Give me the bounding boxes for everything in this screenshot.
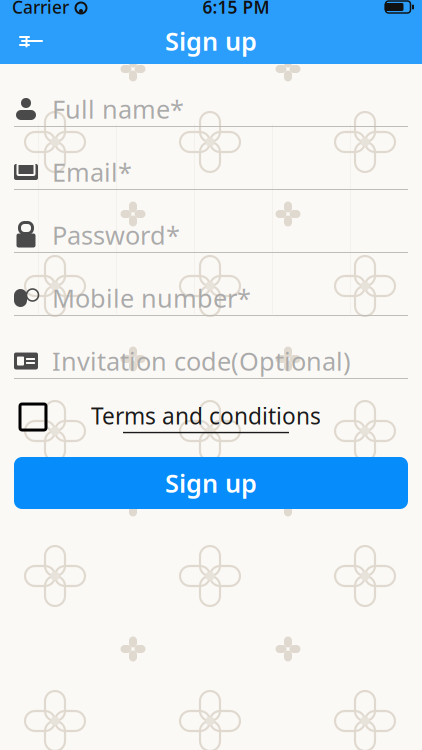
staticText: Full name*	[52, 92, 184, 126]
button[interactable]: Back	[10, 19, 54, 63]
staticText: Password*	[52, 218, 180, 252]
button[interactable]: Email*	[0, 141, 422, 204]
button[interactable]: Full name*	[0, 78, 422, 141]
staticText: Mobile number*	[52, 281, 251, 315]
button[interactable]: Sign up	[0, 457, 422, 509]
staticText: Sign up	[165, 24, 257, 58]
staticText: Carrier	[12, 0, 69, 18]
staticText: Email*	[52, 155, 132, 189]
staticText: Terms and conditions	[91, 401, 321, 431]
button[interactable]: Invitation code(Optional)	[0, 330, 422, 393]
button[interactable]: Mobile number*	[0, 267, 422, 330]
button[interactable]: Terms and conditions	[0, 393, 422, 441]
staticText: Sign up	[165, 466, 257, 500]
button[interactable]: Password*	[0, 204, 422, 267]
staticText: Invitation code(Optional)	[52, 344, 351, 378]
staticText: 6:15 PM	[202, 0, 269, 18]
